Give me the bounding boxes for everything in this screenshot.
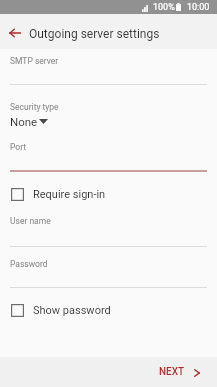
staticText: Security type xyxy=(10,102,59,112)
staticText: 10:00 xyxy=(187,2,210,13)
staticText: Require sign-in xyxy=(33,188,106,201)
staticText: Outgoing server settings xyxy=(29,27,160,41)
staticText: SMTP server xyxy=(10,56,59,66)
staticText: None xyxy=(10,115,38,128)
staticText: 100% xyxy=(153,2,175,13)
staticText: Show password xyxy=(33,304,111,317)
staticText: NEXT xyxy=(159,366,185,378)
button[interactable]: Show password xyxy=(11,300,217,320)
button[interactable]: NEXT xyxy=(159,366,200,378)
staticText: Password xyxy=(10,259,48,269)
button[interactable]: Require sign-in xyxy=(11,184,217,204)
button[interactable]: Navigate up xyxy=(0,18,29,47)
staticText: User name xyxy=(10,216,51,226)
staticText: Port xyxy=(10,142,27,152)
button[interactable]: None xyxy=(6,112,54,130)
